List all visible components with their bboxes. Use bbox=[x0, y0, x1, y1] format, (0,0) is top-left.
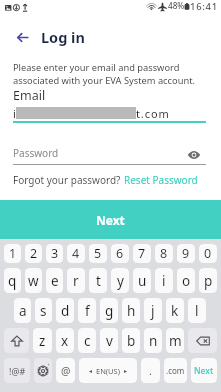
staticText: s bbox=[40, 302, 47, 320]
staticText: Please enter your email and password bbox=[13, 61, 180, 74]
button[interactable]: t bbox=[89, 268, 107, 293]
staticText: g bbox=[105, 302, 114, 320]
button[interactable]: j bbox=[144, 298, 162, 323]
staticText: 2 bbox=[30, 245, 38, 262]
staticText: associated with your EVA System account. bbox=[13, 74, 195, 87]
button[interactable]: Next bbox=[0, 200, 221, 239]
staticText: h bbox=[127, 302, 136, 320]
button[interactable]: y bbox=[111, 268, 129, 293]
button[interactable]: 1 bbox=[4, 244, 21, 263]
staticText: 3 bbox=[51, 245, 59, 262]
button[interactable]: @ bbox=[56, 358, 75, 383]
staticText: n bbox=[149, 332, 158, 350]
staticText: q bbox=[8, 272, 17, 290]
button[interactable]: Backspace bbox=[188, 328, 217, 353]
staticText: d bbox=[61, 302, 70, 320]
staticText: r bbox=[73, 272, 79, 290]
staticText: @ bbox=[61, 364, 71, 378]
button[interactable]: l bbox=[188, 298, 206, 323]
button[interactable]: r bbox=[67, 268, 85, 293]
button[interactable]: w bbox=[25, 268, 42, 293]
button[interactable]: Back bbox=[11, 26, 33, 48]
staticText: 48% bbox=[168, 0, 185, 11]
staticText: 0 bbox=[204, 245, 212, 262]
button[interactable]: Show password bbox=[186, 149, 202, 161]
button[interactable]: v bbox=[100, 328, 118, 353]
staticText: i bbox=[162, 272, 166, 290]
button[interactable]: x bbox=[56, 328, 74, 353]
staticText: Next bbox=[194, 365, 214, 377]
staticText: 1 bbox=[9, 245, 17, 262]
button[interactable]: Forgot your password? bbox=[13, 173, 198, 187]
staticText: 4 bbox=[72, 245, 80, 262]
button[interactable]: c bbox=[78, 328, 96, 353]
button[interactable]: !@# bbox=[4, 358, 30, 383]
button[interactable]: 9 bbox=[177, 244, 195, 263]
staticText: c bbox=[84, 332, 91, 350]
button[interactable]: 4 bbox=[67, 244, 85, 263]
staticText: m bbox=[169, 332, 182, 350]
staticText: Forgot your password? bbox=[13, 173, 124, 187]
button[interactable]: 2 bbox=[25, 244, 42, 263]
button[interactable]: p bbox=[199, 268, 217, 293]
button[interactable]: z bbox=[33, 328, 52, 353]
button[interactable]: a bbox=[14, 298, 31, 323]
button[interactable]: Keyboard settings bbox=[34, 358, 52, 383]
staticText: z bbox=[39, 332, 46, 350]
button[interactable]: h bbox=[122, 298, 140, 323]
button[interactable]: n bbox=[144, 328, 162, 353]
staticText: y bbox=[117, 272, 124, 290]
button[interactable]: b bbox=[122, 328, 140, 353]
staticText: Reset Password bbox=[124, 173, 198, 187]
staticText: u bbox=[138, 272, 147, 290]
staticText: w bbox=[28, 272, 39, 290]
staticText: 5 bbox=[94, 245, 102, 262]
staticText: t bbox=[96, 272, 101, 290]
staticText: Password bbox=[13, 146, 59, 158]
staticText: l bbox=[195, 302, 199, 320]
staticText: k bbox=[171, 302, 179, 320]
staticText: . bbox=[149, 364, 152, 378]
staticText: 7 bbox=[138, 245, 146, 262]
staticText: b bbox=[127, 332, 136, 350]
button[interactable]: g bbox=[100, 298, 118, 323]
staticText: j bbox=[151, 302, 155, 320]
button[interactable]: 3 bbox=[46, 244, 63, 263]
staticText: 6 bbox=[116, 245, 124, 262]
button[interactable]: 5 bbox=[89, 244, 107, 263]
staticText: !@# bbox=[9, 365, 26, 377]
button[interactable]: d bbox=[56, 298, 74, 323]
staticText: 16:41 bbox=[190, 0, 218, 13]
button[interactable]: s bbox=[35, 298, 52, 323]
button[interactable]: 8 bbox=[155, 244, 173, 263]
button[interactable]: 7 bbox=[133, 244, 151, 263]
button[interactable]: . bbox=[141, 358, 160, 383]
staticText: Log in bbox=[41, 27, 85, 47]
staticText: x bbox=[61, 332, 69, 350]
button[interactable]: i bbox=[155, 268, 173, 293]
staticText: p bbox=[204, 272, 213, 290]
staticText: Next bbox=[96, 212, 125, 228]
staticText: v bbox=[106, 332, 113, 350]
staticText: 8 bbox=[160, 245, 168, 262]
staticText: t.com bbox=[136, 106, 170, 119]
button[interactable]: Next bbox=[191, 358, 217, 383]
button[interactable]: 6 bbox=[111, 244, 129, 263]
button[interactable]: m bbox=[166, 328, 184, 353]
button[interactable]: k bbox=[166, 298, 184, 323]
staticText: .com bbox=[166, 365, 185, 376]
button[interactable]: q bbox=[4, 268, 21, 293]
staticText: EN(US) bbox=[96, 366, 120, 376]
staticText: f bbox=[85, 302, 90, 320]
button[interactable]: Shift bbox=[4, 328, 29, 353]
button[interactable]: e bbox=[46, 268, 63, 293]
button[interactable]: .com bbox=[164, 358, 187, 383]
staticText: o bbox=[182, 272, 191, 290]
button[interactable]: f bbox=[78, 298, 96, 323]
button[interactable]: EN(US) bbox=[79, 358, 137, 383]
staticText: Email bbox=[13, 87, 46, 104]
button[interactable]: u bbox=[133, 268, 151, 293]
button[interactable]: o bbox=[177, 268, 195, 293]
button[interactable]: 0 bbox=[199, 244, 217, 263]
staticText: 9 bbox=[182, 245, 190, 262]
